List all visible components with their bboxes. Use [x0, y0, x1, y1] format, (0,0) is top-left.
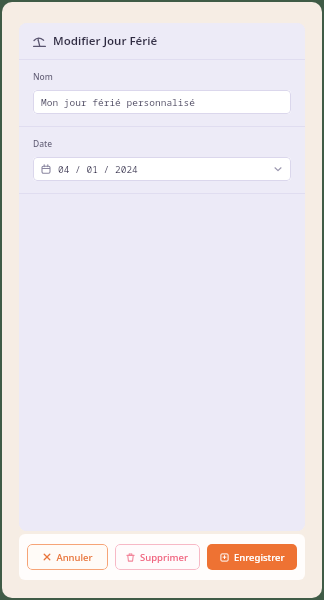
button[interactable]: Enregistrer: [207, 544, 297, 570]
button[interactable]: Annuler: [27, 544, 108, 570]
staticText: Mon jour férié personnalisé: [41, 96, 195, 109]
button[interactable]: 04 / 01 / 2024: [33, 157, 291, 181]
staticText: Enregistrer: [234, 551, 285, 564]
button[interactable]: Mon jour férié personnalisé: [33, 90, 291, 114]
staticText: Date: [33, 138, 53, 150]
staticText: Annuler: [56, 551, 93, 564]
staticText: 04 / 01 / 2024: [58, 163, 138, 176]
staticText: Modifier Jour Férié: [53, 33, 158, 49]
staticText: Nom: [33, 71, 53, 83]
button[interactable]: Supprimer: [115, 544, 200, 570]
staticText: Supprimer: [140, 551, 189, 564]
